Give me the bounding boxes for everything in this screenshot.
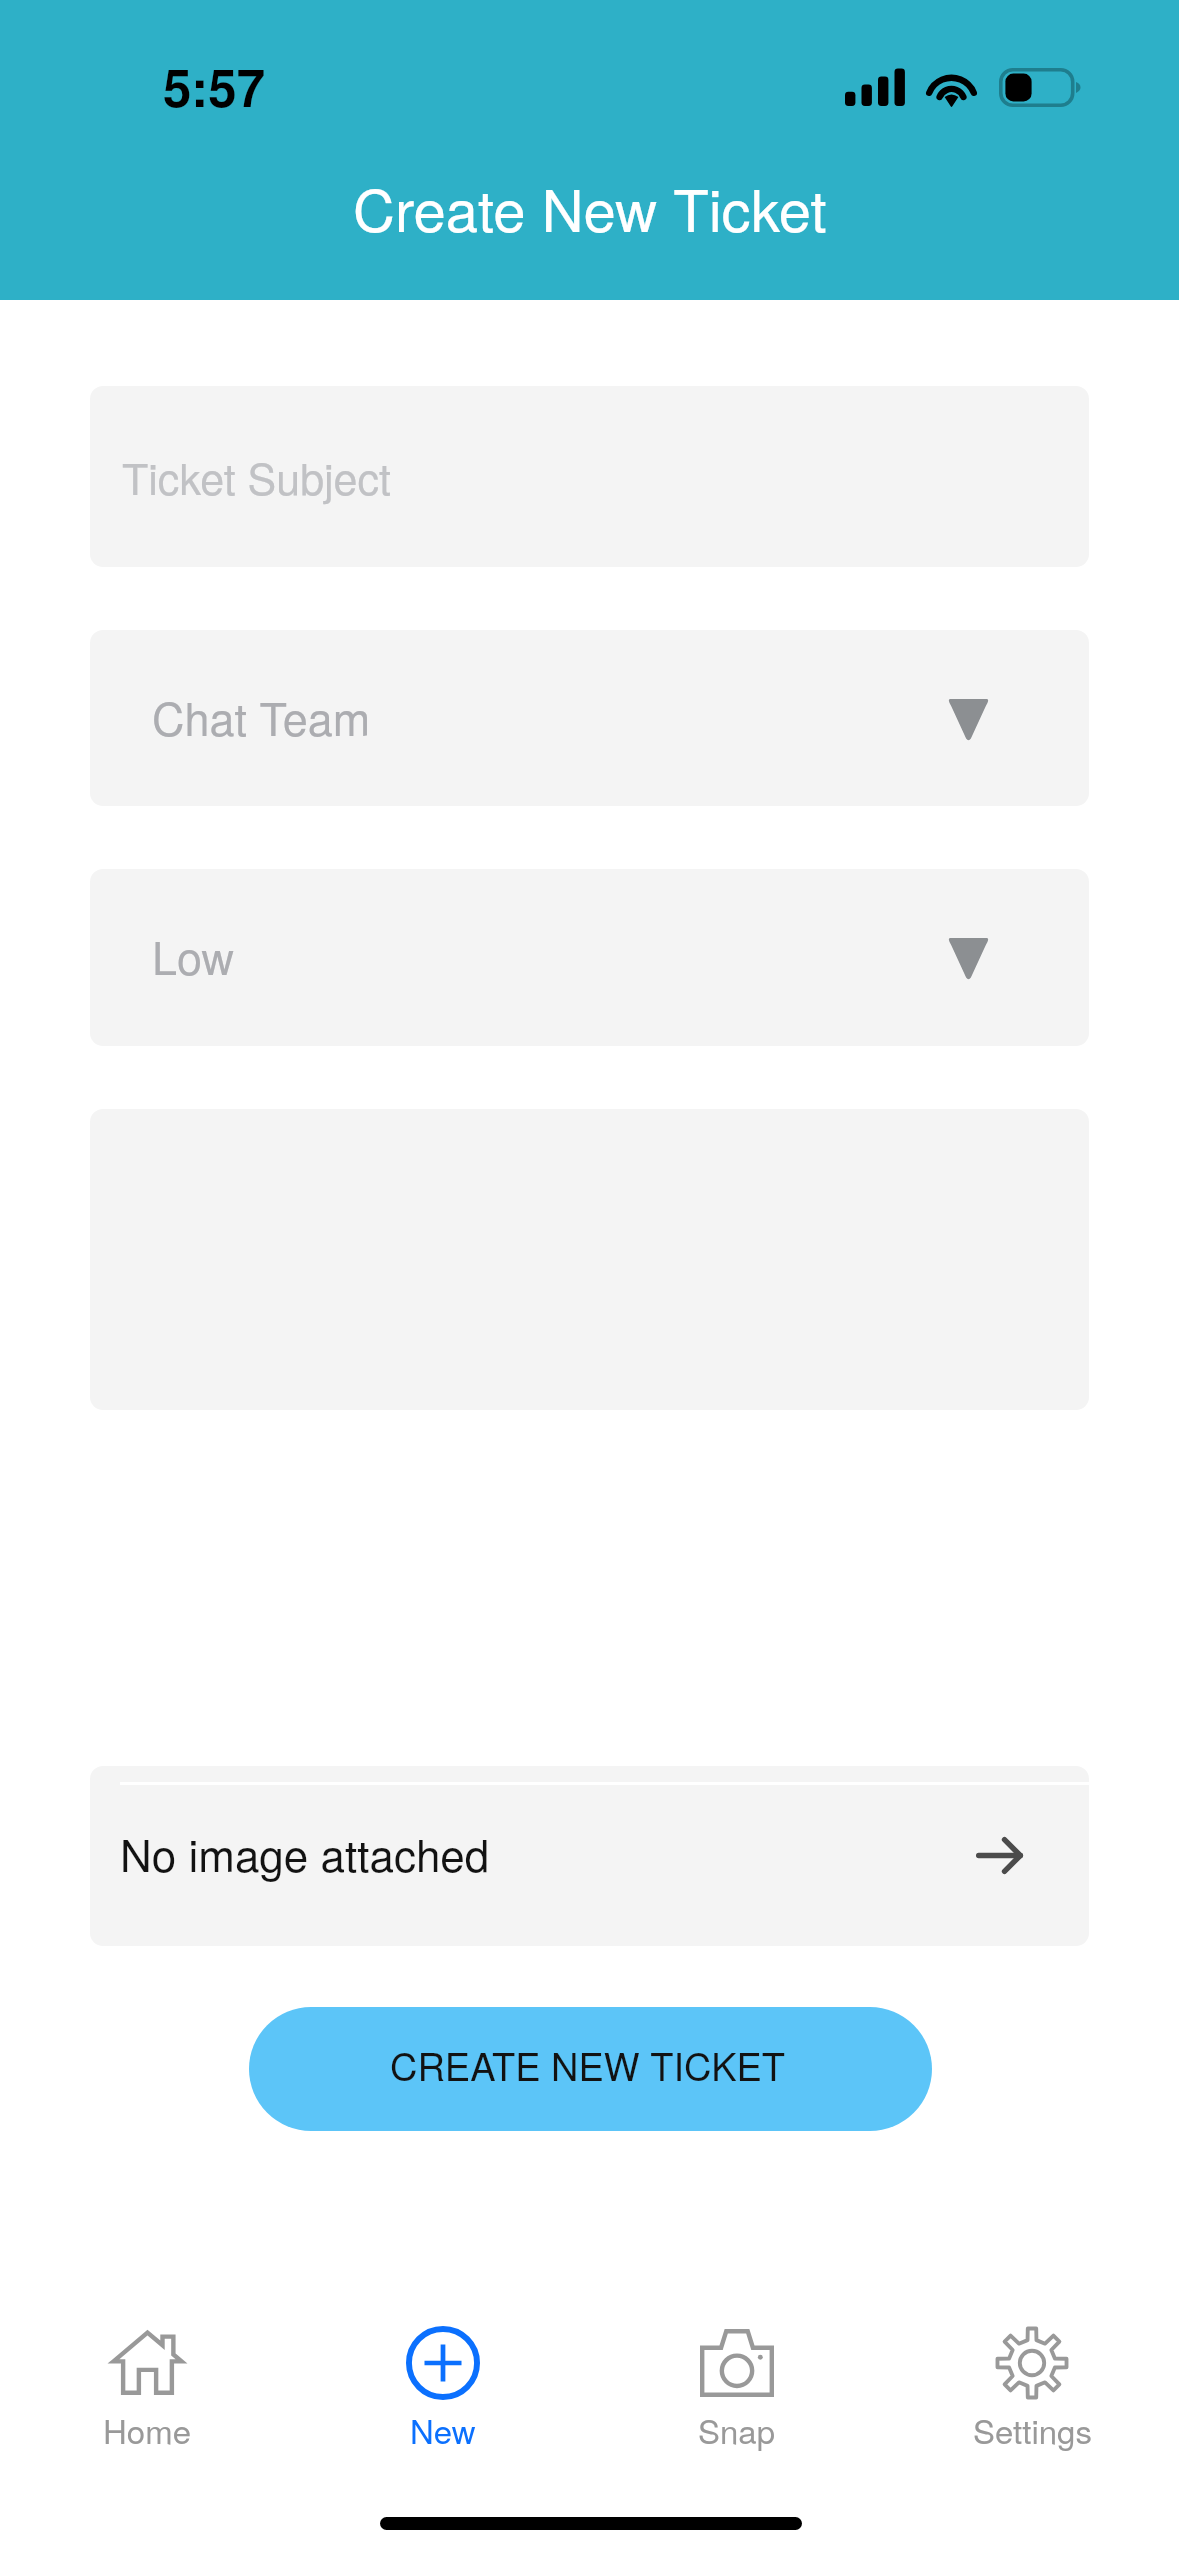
staticText: Create New Ticket (353, 165, 827, 248)
staticText: Ticket Subject (122, 446, 391, 508)
button[interactable]: Settings (922, 2300, 1142, 2470)
other: New (406, 2326, 480, 2400)
button[interactable]: No image attached (90, 1766, 1089, 1946)
staticText: Low (152, 923, 235, 987)
button[interactable]: Chat Team (90, 630, 1089, 806)
button[interactable]: Low (90, 869, 1089, 1046)
other: Home (110, 2329, 185, 2395)
other: Snap (700, 2329, 774, 2397)
staticText: Settings (973, 2406, 1092, 2453)
button[interactable]: New (333, 2300, 553, 2470)
other: Open Low options (947, 938, 990, 981)
other: Open Chat Team options (947, 699, 990, 742)
staticText: Home (103, 2406, 192, 2453)
other: Settings (995, 2326, 1069, 2400)
button[interactable]: Home (37, 2300, 257, 2470)
staticText: Snap (698, 2406, 776, 2453)
staticText: 5:57 (163, 50, 266, 123)
staticText: No image attached (120, 1821, 490, 1884)
button[interactable]: CREATE NEW TICKET (249, 2007, 932, 2131)
button[interactable]: Ticket Subject (90, 386, 1089, 567)
button[interactable]: Snap (627, 2300, 847, 2470)
staticText: New (410, 2406, 476, 2453)
staticText: CREATE NEW TICKET (390, 2037, 786, 2091)
other: Attach image (976, 1837, 1023, 1874)
staticText: Chat Team (152, 684, 371, 748)
